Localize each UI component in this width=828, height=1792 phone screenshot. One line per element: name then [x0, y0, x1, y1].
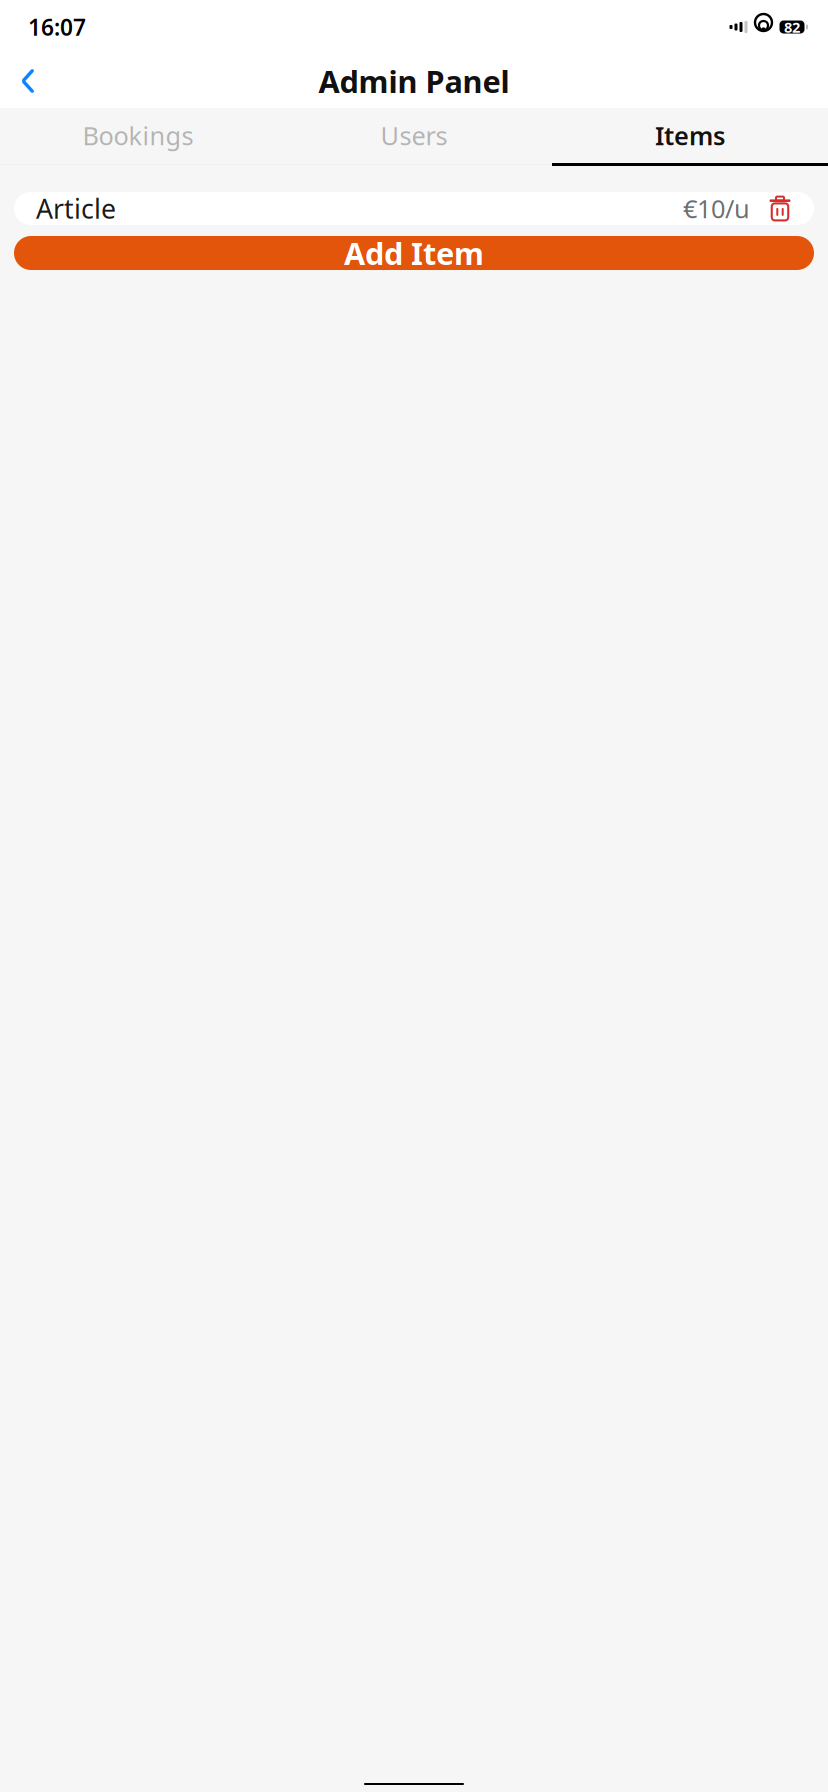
staticText: Items	[655, 119, 725, 152]
button[interactable]: Add Item	[14, 236, 814, 270]
staticText: Users	[380, 119, 447, 152]
button[interactable]: Back	[6, 59, 50, 103]
button[interactable]: Users	[276, 108, 552, 163]
staticText: Bookings	[82, 119, 193, 152]
staticText: Article	[36, 191, 116, 226]
staticText: €10/u	[683, 192, 750, 225]
button[interactable]: Items	[552, 108, 828, 163]
staticText: Admin Panel	[318, 61, 509, 101]
staticText: 16:07	[28, 12, 86, 42]
staticText: Add Item	[344, 233, 484, 273]
button[interactable]: Article	[14, 192, 814, 225]
staticText: 82	[784, 17, 800, 37]
button[interactable]: Bookings	[0, 108, 276, 163]
